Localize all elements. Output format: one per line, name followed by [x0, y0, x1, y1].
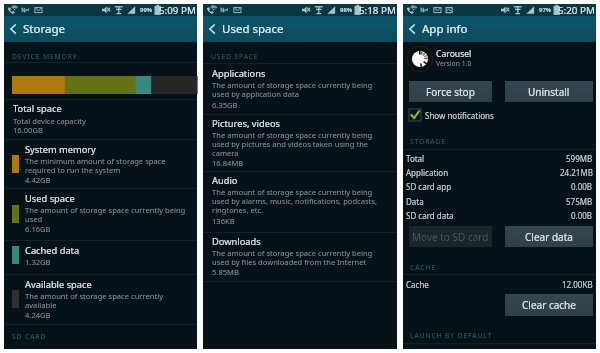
- button[interactable]: SD card app: [403, 179, 596, 193]
- button[interactable]: [4, 240, 197, 274]
- staticText: STORAGE: [410, 137, 595, 146]
- staticText: LAUNCH BY DEFAULT: [410, 331, 595, 340]
- button[interactable]: [203, 232, 397, 281]
- other: Carousel app icon: [407, 46, 433, 72]
- staticText: Audio: [212, 174, 406, 187]
- button[interactable]: [203, 114, 397, 171]
- staticText: 24.21MB: [560, 167, 593, 178]
- staticText: The amount of storage space currently be…: [212, 248, 392, 268]
- staticText: SD card app: [406, 181, 452, 192]
- button[interactable]: Move to SD card: [409, 226, 492, 247]
- staticText: The minimum amount of storage space requ…: [25, 156, 193, 176]
- button[interactable]: Data: [403, 194, 596, 208]
- staticText: 5:18 PM: [359, 4, 396, 16]
- staticText: Move to SD card: [412, 230, 489, 244]
- button[interactable]: Show notifications: [409, 109, 529, 121]
- staticText: Cached data: [25, 244, 218, 257]
- staticText: 575MB: [566, 196, 593, 207]
- button[interactable]: [203, 63, 397, 114]
- staticText: 599MB: [566, 153, 593, 164]
- button[interactable]: Cache: [403, 277, 596, 291]
- staticText: Clear data: [525, 230, 573, 244]
- staticText: 5:20 PM: [558, 4, 595, 16]
- staticText: Storage: [23, 21, 65, 37]
- staticText: Used space: [25, 192, 218, 205]
- staticText: The amount of storage space currently av…: [25, 291, 193, 311]
- staticText: Carousel: [436, 48, 600, 60]
- button[interactable]: [4, 188, 197, 240]
- staticText: 4.42GB: [25, 175, 218, 185]
- staticText: Show notifications: [425, 110, 494, 121]
- staticText: 4.24GB: [25, 310, 218, 320]
- staticText: Clear cache: [522, 298, 576, 312]
- button[interactable]: Navigate up: [4, 16, 197, 42]
- staticText: 12.00KB: [562, 279, 593, 290]
- staticText: Total: [406, 153, 425, 164]
- staticText: 16.00GB: [13, 125, 206, 135]
- other: Navigate up: [409, 24, 415, 34]
- button[interactable]: Application: [403, 165, 596, 179]
- staticText: DEVICE MEMORY: [12, 52, 197, 61]
- button[interactable]: Uninstall: [505, 81, 593, 102]
- staticText: Uninstall: [528, 85, 570, 99]
- staticText: 5.85MB: [212, 267, 406, 277]
- staticText: 6.35GB: [212, 100, 406, 110]
- other: Navigate up: [10, 24, 16, 34]
- staticText: 6.16GB: [25, 224, 218, 234]
- staticText: Total device capacity: [13, 116, 206, 126]
- staticText: Total space: [13, 102, 206, 115]
- staticText: The amount of storage space currently be…: [25, 205, 193, 225]
- staticText: 5:09 PM: [159, 4, 196, 16]
- button[interactable]: Clear cache: [505, 294, 593, 316]
- staticText: SD card data: [406, 210, 454, 221]
- staticText: 0.00B: [571, 181, 593, 192]
- staticText: Applications: [212, 67, 406, 80]
- staticText: Pictures, videos: [212, 117, 406, 130]
- button[interactable]: [4, 139, 197, 188]
- staticText: System memory: [25, 143, 218, 156]
- button[interactable]: [203, 171, 397, 232]
- button[interactable]: Navigate up: [403, 16, 596, 42]
- staticText: Cache: [406, 279, 429, 290]
- staticText: 1.32GB: [25, 257, 218, 267]
- staticText: App info: [422, 21, 468, 37]
- staticText: Available space: [25, 278, 218, 291]
- staticText: Downloads: [212, 235, 406, 248]
- staticText: 98%: [340, 6, 353, 14]
- staticText: 97%: [539, 6, 552, 14]
- button[interactable]: [4, 274, 197, 324]
- other: Navigate up: [209, 24, 215, 34]
- staticText: Force stop: [426, 85, 475, 99]
- button[interactable]: Clear data: [505, 226, 593, 247]
- staticText: Version 1.0: [436, 59, 600, 68]
- staticText: 0.00B: [571, 210, 593, 221]
- staticText: 99%: [140, 6, 153, 14]
- button[interactable]: Total: [403, 151, 596, 165]
- staticText: 136KB: [212, 216, 406, 226]
- staticText: Application: [406, 167, 449, 178]
- button[interactable]: Navigate up: [203, 16, 397, 42]
- staticText: USED SPACE: [211, 52, 396, 61]
- staticText: 16.84MB: [212, 158, 406, 168]
- button[interactable]: Force stop: [409, 81, 492, 102]
- staticText: The amount of storage space currently be…: [212, 187, 394, 216]
- staticText: Used space: [222, 21, 284, 37]
- staticText: The amount of storage space currently be…: [212, 130, 392, 159]
- button[interactable]: [4, 99, 197, 139]
- staticText: SD CARD: [12, 332, 197, 341]
- staticText: CACHE: [410, 263, 595, 272]
- button[interactable]: SD card data: [403, 208, 596, 222]
- staticText: The amount of storage space currently be…: [212, 80, 392, 100]
- staticText: Data: [406, 196, 424, 207]
